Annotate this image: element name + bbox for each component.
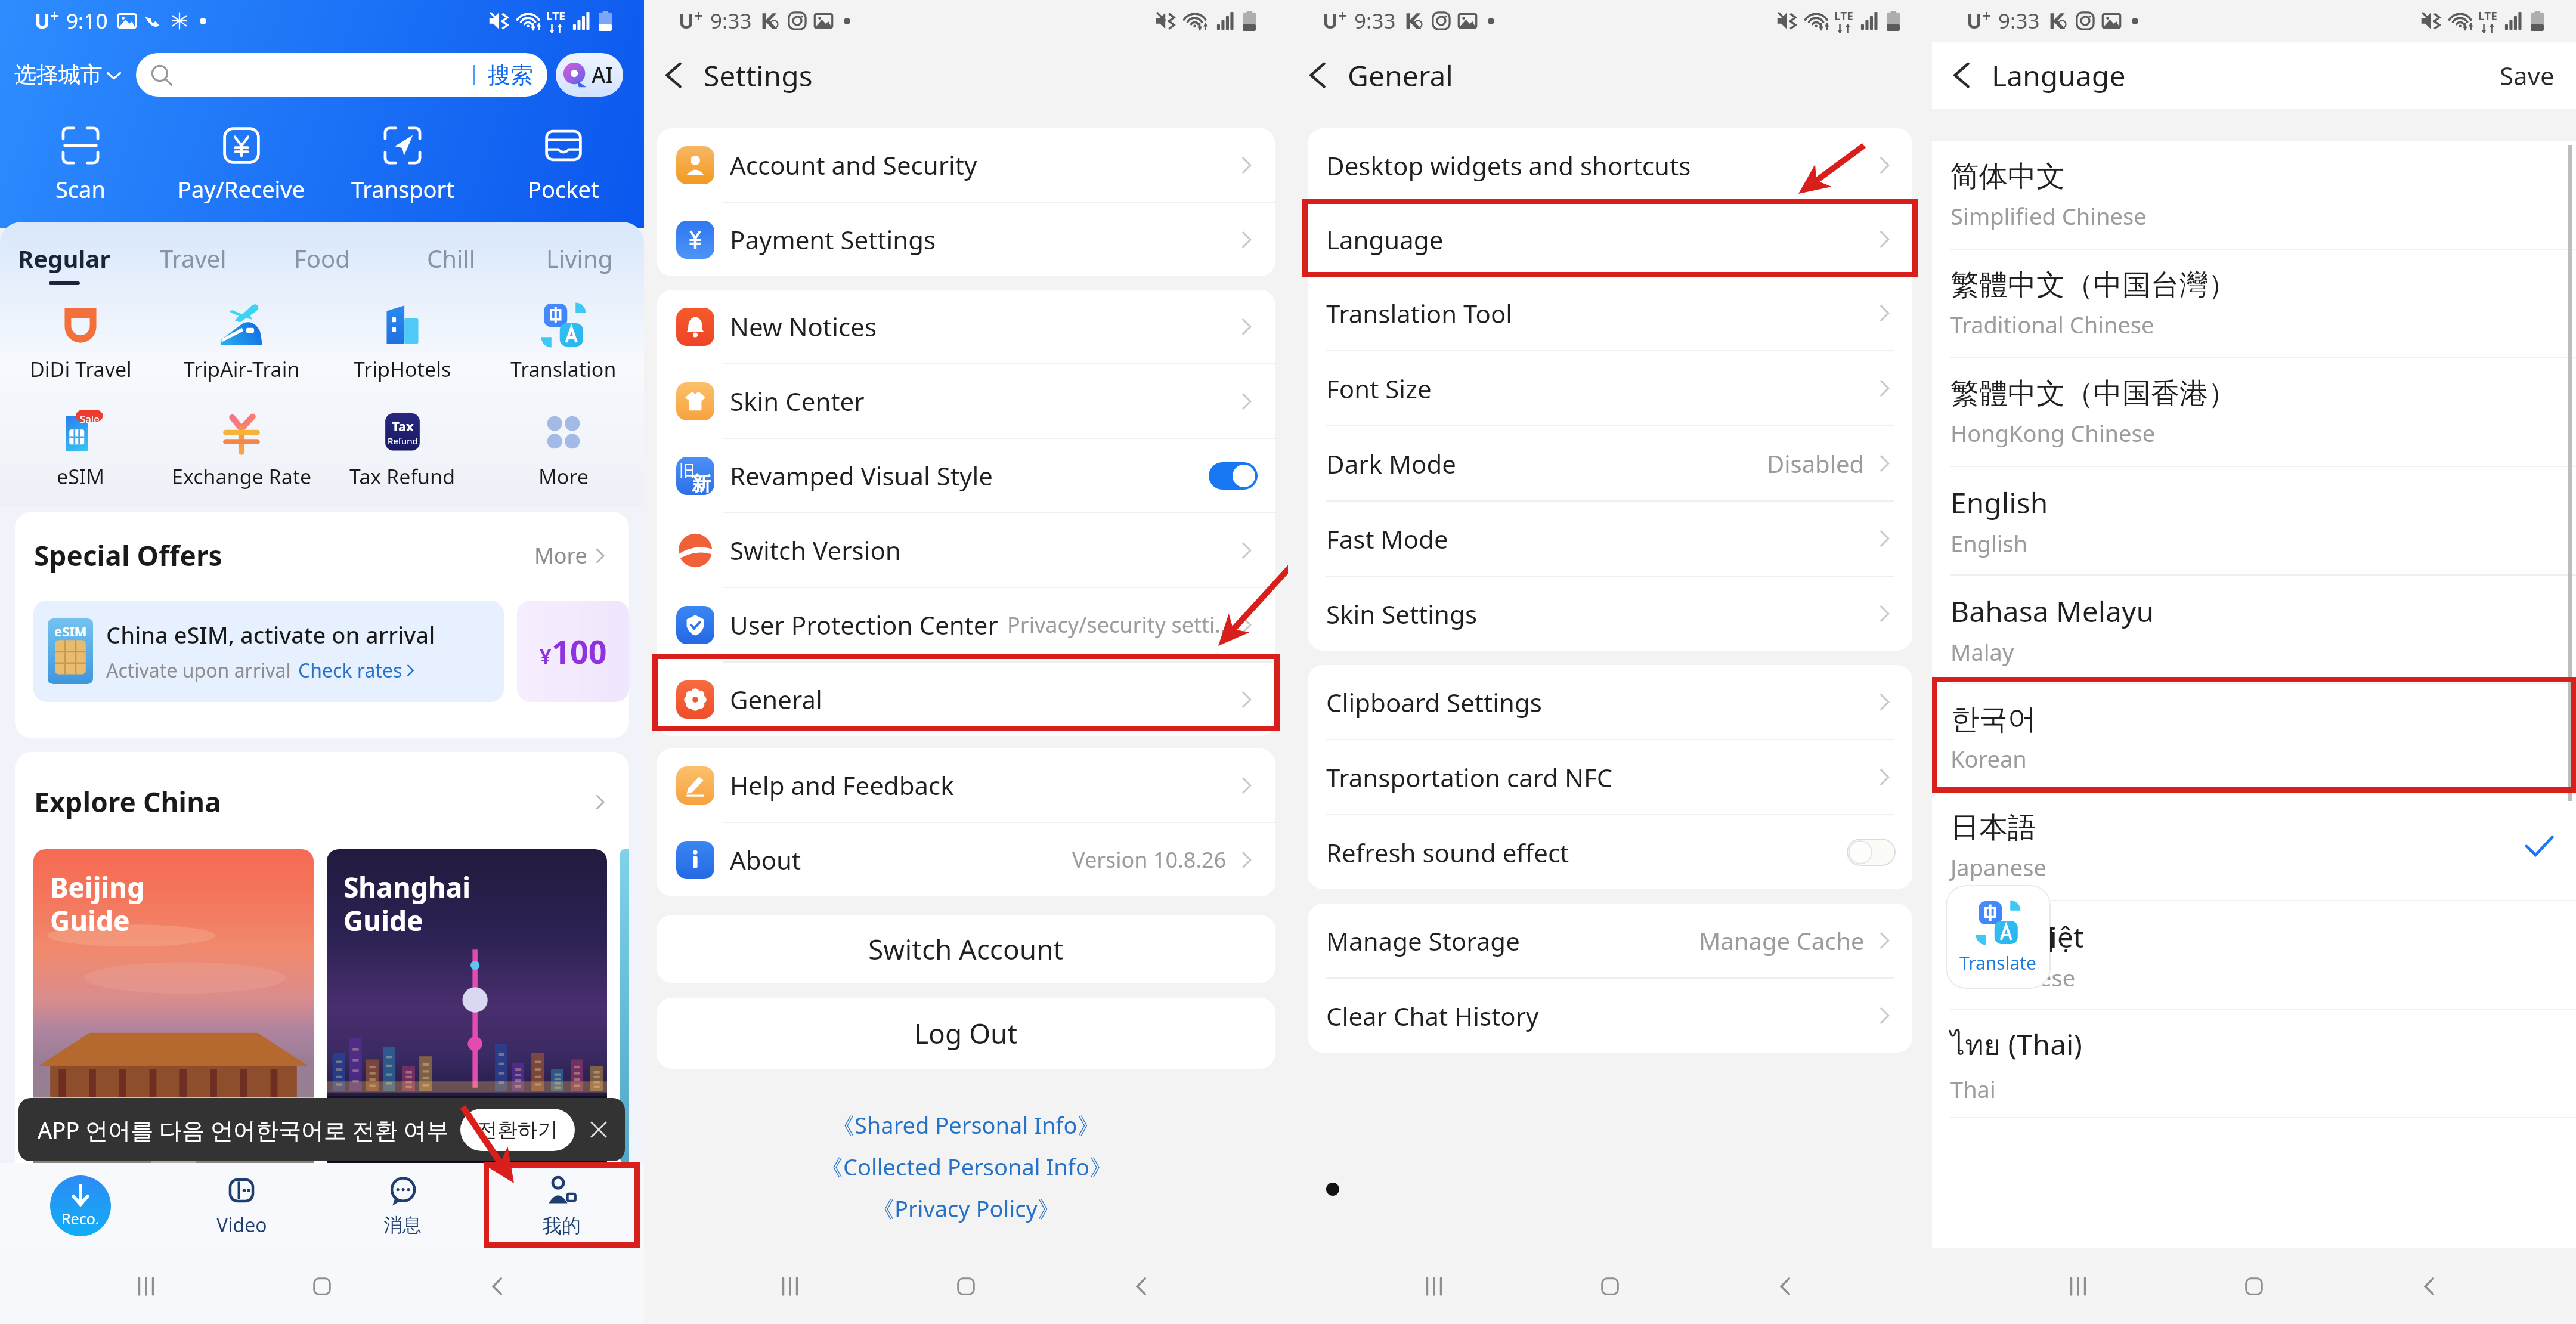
button[interactable]: Desktop widgets and shortcuts — [1308, 128, 1912, 202]
button[interactable]: Pocket — [483, 126, 644, 205]
button[interactable]: Recents — [116, 1257, 176, 1316]
button[interactable]: 繁體中文（中国台灣） — [1932, 250, 2576, 357]
button[interactable]: Video — [161, 1163, 322, 1248]
staticText: Beijing Guide — [50, 868, 145, 939]
staticText: Privacy/security setti.. — [1007, 610, 1227, 639]
button[interactable]: ไทย (Thai) — [1932, 1010, 2576, 1117]
button[interactable]: Payment Settings — [657, 203, 1275, 276]
button[interactable]: Pay/Receive — [161, 126, 322, 205]
button[interactable]: Sale — [0, 409, 161, 490]
staticText: Simplified Chinese — [1950, 200, 2147, 231]
button[interactable]: Food — [258, 242, 386, 274]
button[interactable]: Back — [2400, 1257, 2460, 1316]
button[interactable]: More — [534, 541, 610, 570]
button[interactable]: Travel — [129, 242, 258, 274]
button[interactable]: English — [1932, 467, 2576, 574]
button[interactable]: Back — [644, 42, 704, 109]
button[interactable]: 전환하기 — [460, 1109, 575, 1151]
button[interactable]: Home — [936, 1257, 996, 1316]
button[interactable]: Home — [292, 1257, 352, 1316]
button[interactable]: Back — [468, 1257, 528, 1316]
button[interactable]: Fast Mode — [1308, 502, 1912, 576]
staticText: Tax Refund — [349, 463, 456, 490]
staticText: Refresh sound effect — [1326, 836, 1569, 870]
staticText: Vietnamese — [1950, 962, 2076, 993]
button[interactable]: Recents — [1404, 1257, 1464, 1316]
staticText: Japanese — [1950, 852, 2046, 883]
staticText: 9:33 — [1998, 7, 2040, 35]
button[interactable]: Transportation card NFC — [1308, 740, 1912, 814]
staticText: LTE — [1834, 8, 1853, 24]
button[interactable]: Home — [2224, 1257, 2284, 1316]
button[interactable]: Help and Feedback — [657, 748, 1275, 822]
button[interactable]: Bahasa Melayu — [1932, 576, 2576, 683]
button[interactable]: 《Privacy Policy》 — [872, 1193, 1060, 1224]
button[interactable]: Account and Security — [657, 128, 1275, 202]
button[interactable]: Regular — [0, 242, 129, 285]
button[interactable]: Refresh sound effect — [1308, 815, 1912, 889]
button[interactable]: Back — [1112, 1257, 1172, 1316]
button[interactable]: 简体中文 — [1932, 141, 2576, 249]
staticText: eSIM — [57, 463, 105, 490]
button[interactable]: Skin Settings — [1308, 577, 1912, 651]
staticText: 100 — [552, 629, 607, 673]
button[interactable]: Language — [1308, 202, 1912, 276]
button[interactable]: About — [657, 823, 1275, 896]
button[interactable]: User Protection Center — [657, 588, 1275, 661]
button[interactable]: 한국어 — [1932, 684, 2576, 791]
button[interactable]: Home — [1580, 1257, 1640, 1316]
button[interactable]: eSIM — [33, 601, 504, 702]
button[interactable]: 选择城市 — [14, 61, 123, 89]
button[interactable]: Switch Account — [657, 915, 1275, 983]
button[interactable]: Scan — [0, 126, 161, 205]
button[interactable]: Back — [1932, 42, 1992, 109]
button[interactable]: Chill — [386, 242, 515, 274]
button[interactable]: Log Out — [657, 998, 1275, 1069]
button[interactable]: 繁體中文（中国香港） — [1932, 358, 2576, 466]
button[interactable]: 旧 — [657, 439, 1275, 512]
button[interactable]: Explore China — [34, 783, 610, 821]
button[interactable]: Translation Tool — [1308, 276, 1912, 350]
button[interactable]: Font Size — [1308, 351, 1912, 425]
button[interactable]: 消息 — [322, 1163, 483, 1248]
staticText: Malay — [1950, 636, 2014, 667]
staticText: Sale — [80, 412, 100, 426]
button[interactable]: Dark Mode — [1308, 426, 1912, 500]
button[interactable]: More — [483, 409, 644, 490]
button[interactable]: Reco. — [0, 1163, 161, 1248]
button[interactable]: 我的 — [484, 1162, 640, 1248]
button[interactable]: Tax — [322, 409, 483, 490]
button[interactable]: Clear Chat History — [1308, 979, 1912, 1053]
button[interactable]: 《Collected Personal Info》 — [821, 1151, 1112, 1182]
staticText: TripHotels — [354, 355, 451, 383]
button[interactable]: TripHotels — [322, 302, 483, 383]
button[interactable]: Switch Version — [657, 513, 1275, 587]
button[interactable]: 搜索 — [136, 53, 547, 97]
button[interactable]: Manage Storage — [1308, 904, 1912, 977]
button[interactable]: Close — [587, 1118, 611, 1142]
button[interactable]: Save — [2478, 42, 2576, 109]
button[interactable]: Recents — [760, 1257, 820, 1316]
button[interactable]: AI — [556, 53, 623, 97]
staticText: Translate — [1959, 951, 2037, 975]
button[interactable]: Tiếng Việt — [1932, 901, 2576, 1009]
button[interactable]: Shanghai Guide — [327, 849, 607, 1163]
button[interactable]: Beijing Guide — [33, 849, 314, 1163]
button[interactable]: Skin Center — [657, 364, 1275, 438]
button[interactable]: Recents — [2048, 1257, 2108, 1316]
button[interactable]: Exchange Rate — [161, 409, 322, 490]
button[interactable]: ¥ — [517, 601, 629, 702]
button[interactable]: Clipboard Settings — [1308, 665, 1912, 739]
button[interactable]: DiDi Travel — [0, 302, 161, 383]
button[interactable]: New Notices — [657, 290, 1275, 363]
button[interactable]: Translation — [483, 302, 644, 383]
button[interactable]: General — [657, 663, 1275, 736]
button[interactable]: Living — [515, 242, 644, 274]
button[interactable]: 《Shared Personal Info》 — [832, 1109, 1100, 1140]
button[interactable]: Back — [1288, 42, 1348, 109]
button[interactable]: Transport — [322, 126, 483, 205]
button[interactable]: Back — [1756, 1257, 1816, 1316]
staticText: Log Out — [914, 1014, 1018, 1052]
button[interactable]: TripAir-Train — [161, 302, 322, 383]
button[interactable]: 日本語 — [1932, 793, 2576, 900]
